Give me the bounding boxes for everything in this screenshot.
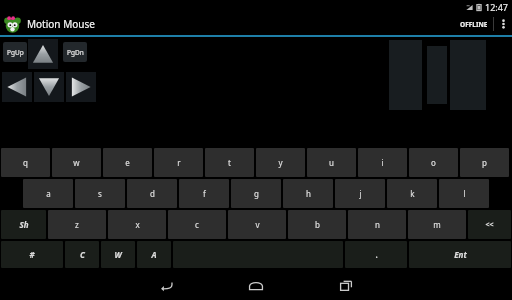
button[interactable]: n (348, 210, 406, 239)
staticText: t (228, 157, 231, 168)
staticText: u (329, 157, 334, 168)
staticText: b (315, 219, 320, 230)
button[interactable]: d (127, 179, 177, 208)
button[interactable]: m (408, 210, 466, 239)
button[interactable]: # (1, 241, 63, 268)
staticText: g (254, 188, 259, 199)
staticText: d (150, 188, 155, 199)
staticText: y (278, 157, 283, 168)
staticText: . (375, 249, 378, 260)
button[interactable]: Sh (1, 210, 46, 239)
staticText: l (463, 188, 466, 199)
button[interactable]: Right (66, 72, 96, 102)
button[interactable]: p (460, 148, 509, 177)
button[interactable]: z (48, 210, 106, 239)
button[interactable]: C (65, 241, 99, 268)
button[interactable]: Back (138, 272, 194, 298)
staticText: e (125, 157, 130, 168)
button[interactable]: PgUp (3, 42, 27, 62)
staticText: W (114, 249, 122, 260)
button[interactable]: Up (28, 39, 58, 69)
button[interactable]: t (205, 148, 254, 177)
staticText: PgDn (67, 48, 84, 57)
button[interactable]: A (137, 241, 171, 268)
button[interactable]: h (283, 179, 333, 208)
button[interactable]: PgDn (63, 42, 87, 62)
button[interactable]: i (358, 148, 407, 177)
staticText: q (23, 157, 28, 168)
staticText: # (29, 249, 35, 260)
button[interactable]: u (307, 148, 356, 177)
staticText: p (482, 157, 487, 168)
button[interactable]: k (387, 179, 437, 208)
button[interactable]: . (345, 241, 407, 268)
button[interactable]: l (439, 179, 489, 208)
button[interactable]: g (231, 179, 281, 208)
button[interactable]: a (23, 179, 73, 208)
button[interactable]: x (108, 210, 166, 239)
button[interactable]: More options (494, 13, 512, 35)
button[interactable]: Down (34, 72, 64, 102)
staticText: x (135, 219, 140, 230)
button[interactable]: e (103, 148, 152, 177)
staticText: Sh (19, 219, 29, 230)
staticText: << (485, 220, 494, 230)
staticText: w (73, 157, 80, 168)
button[interactable]: w (52, 148, 101, 177)
button[interactable]: c (168, 210, 226, 239)
button[interactable]: << (468, 210, 511, 239)
button[interactable]: b (288, 210, 346, 239)
staticText: c (195, 219, 199, 230)
button[interactable]: r (154, 148, 203, 177)
staticText: v (255, 219, 260, 230)
staticText: Motion Mouse (27, 17, 95, 31)
staticText: r (177, 157, 181, 168)
button[interactable]: q (1, 148, 50, 177)
button[interactable]: o (409, 148, 458, 177)
staticText: OFFLINE (460, 20, 488, 29)
button[interactable]: Ent (409, 241, 511, 268)
button[interactable]: j (335, 179, 385, 208)
button[interactable]: OFFLINE (455, 13, 493, 35)
button[interactable]: Recent apps (318, 272, 374, 298)
button[interactable]: v (228, 210, 286, 239)
button[interactable]: f (179, 179, 229, 208)
staticText: C (80, 249, 85, 260)
staticText: f (203, 188, 206, 199)
staticText: o (431, 157, 436, 168)
staticText: A (151, 249, 157, 260)
staticText: z (75, 219, 79, 230)
staticText: h (306, 188, 311, 199)
staticText: a (46, 188, 51, 199)
staticText: k (410, 188, 415, 199)
button[interactable]: Left (2, 72, 32, 102)
button[interactable]: W (101, 241, 135, 268)
staticText: Ent (454, 249, 467, 260)
staticText: n (375, 219, 380, 230)
staticText: PgUp (7, 48, 24, 57)
staticText: m (433, 219, 441, 230)
staticText: j (359, 188, 362, 199)
staticText: i (381, 157, 384, 168)
button[interactable]: s (75, 179, 125, 208)
button[interactable]: Home (228, 272, 284, 298)
button[interactable]: y (256, 148, 305, 177)
staticText: 12:47 (485, 1, 509, 13)
staticText: s (98, 188, 102, 199)
